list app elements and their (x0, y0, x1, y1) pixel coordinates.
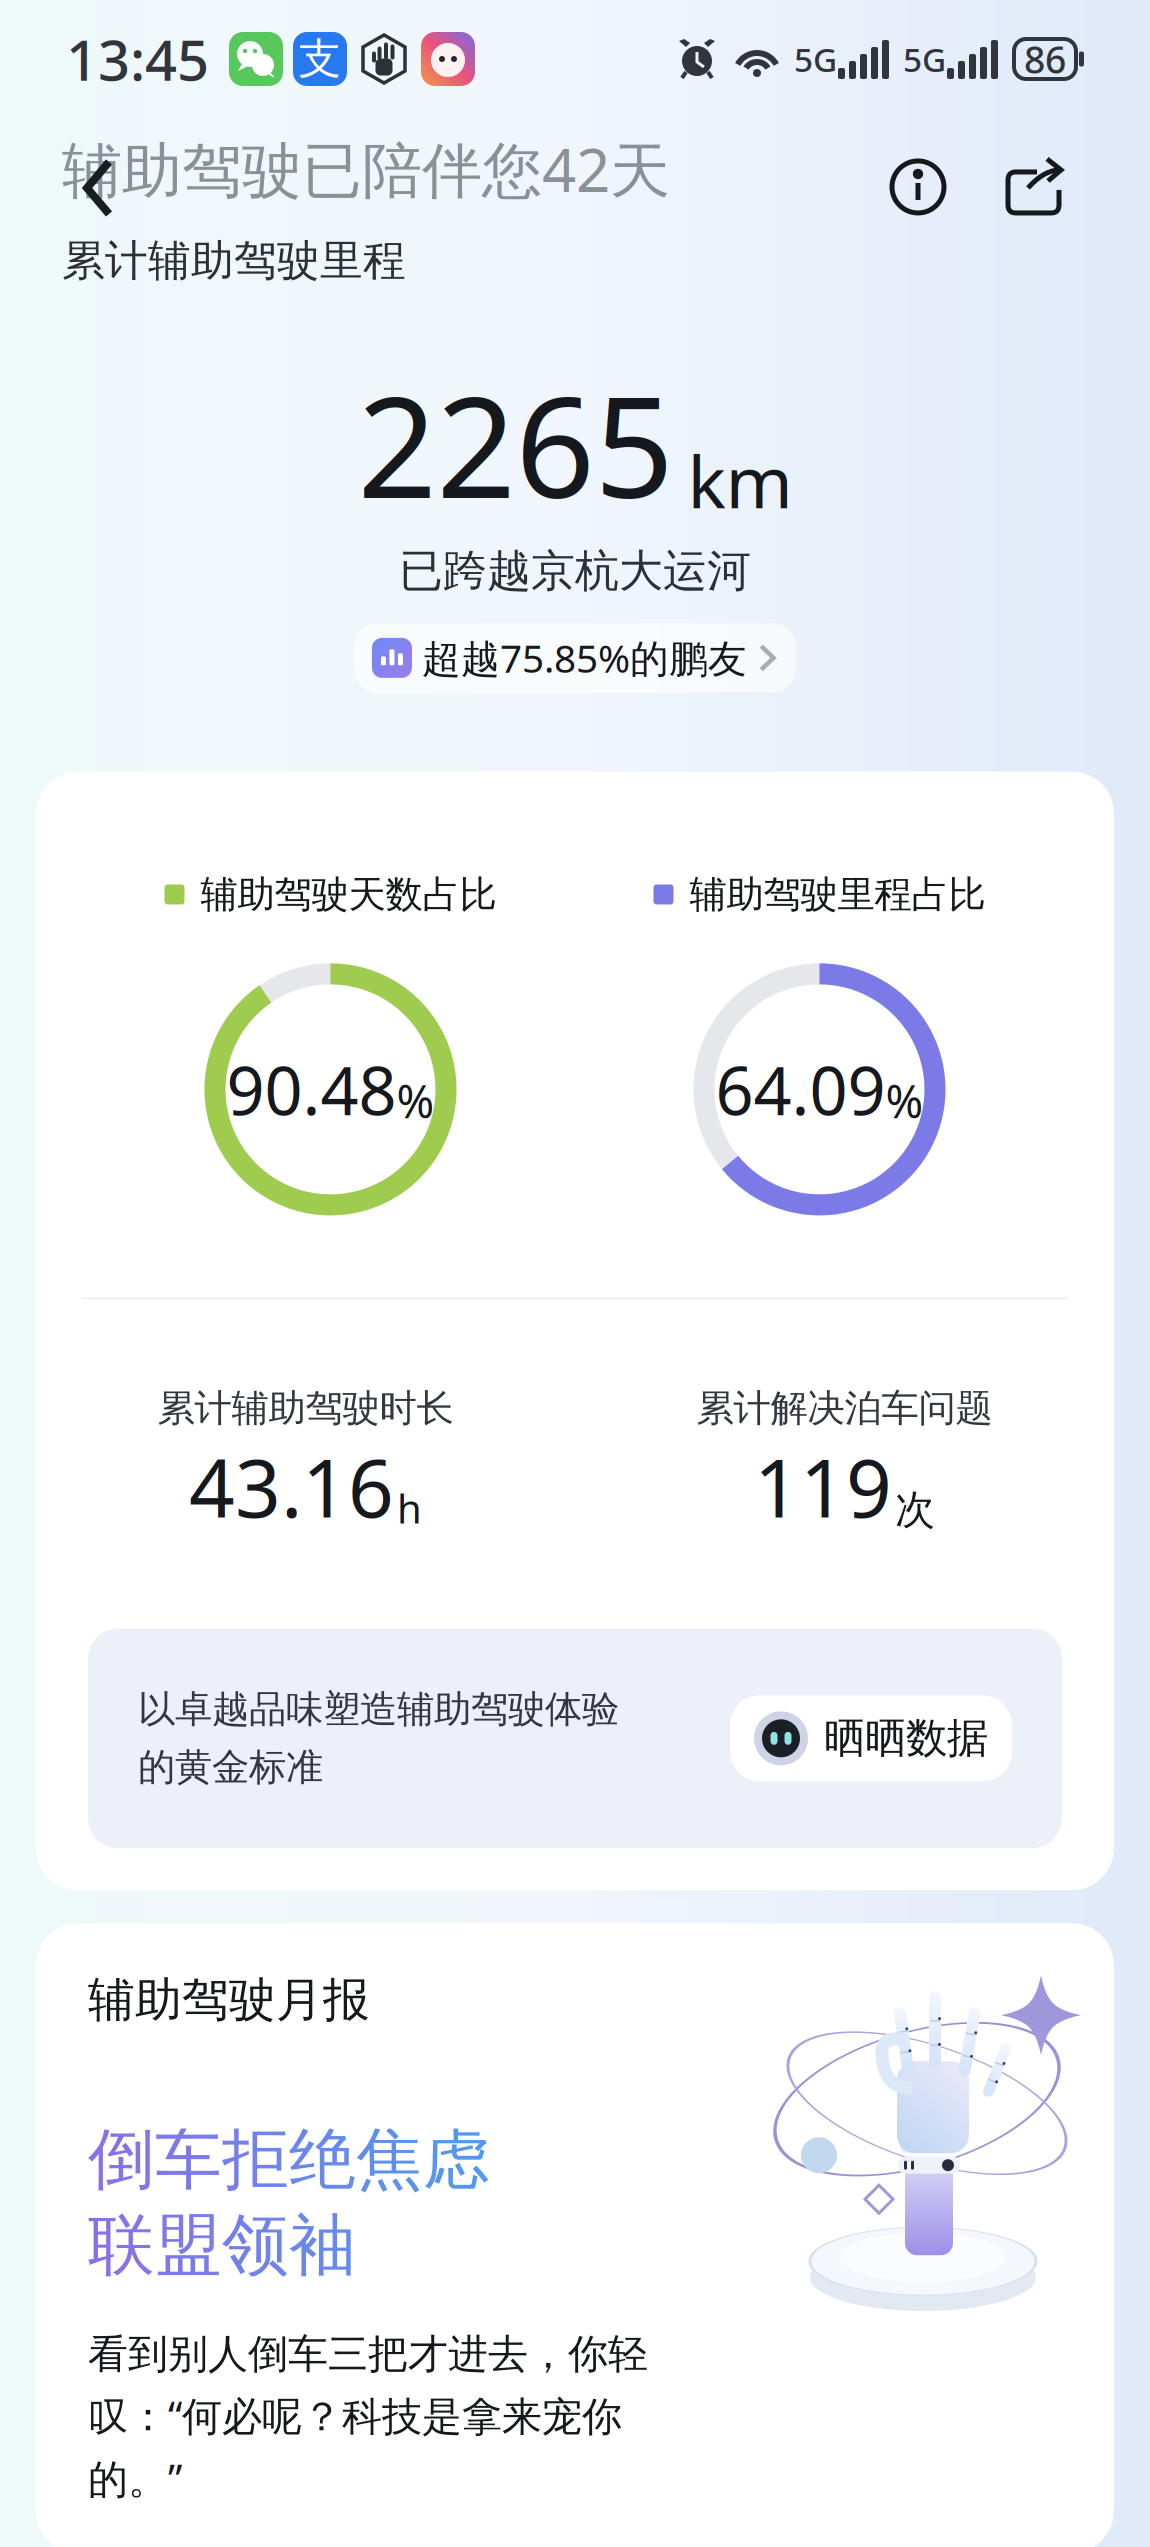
staticText: % (396, 1070, 434, 1131)
staticText: 支 (298, 33, 341, 85)
button[interactable]: 晒晒数据 (730, 1695, 1012, 1781)
staticText: % (885, 1070, 923, 1131)
staticText: 43.16 (189, 1433, 394, 1539)
button[interactable]: 说明 (889, 129, 947, 216)
button[interactable]: 返回 (82, 159, 114, 217)
staticText: 5G (794, 37, 837, 81)
staticText: 辅助驾驶已陪伴您42天 (62, 129, 670, 209)
staticText: 累计辅助驾驶里程 (62, 235, 406, 287)
staticText: 次 (895, 1485, 935, 1534)
staticText: h (397, 1481, 422, 1534)
staticText: 辅助驾驶月报 (88, 1971, 370, 2028)
button[interactable]: 分享 (947, 129, 1066, 217)
staticText: 13:45 (66, 22, 209, 96)
staticText: 晒晒数据 (824, 1713, 988, 1764)
button[interactable]: 超越75.85%的鹏友 (354, 623, 796, 692)
staticText: 辅助驾驶里程占比 (689, 871, 985, 917)
staticText: 累计解决泊车问题 (696, 1385, 992, 1431)
staticText: 以卓越品味塑造辅助驾驶体验 的黄金标准 (138, 1686, 619, 1790)
staticText: km (687, 432, 792, 528)
staticText: 累计辅助驾驶时长 (157, 1385, 453, 1431)
staticText: 86 (1024, 34, 1066, 84)
staticText: 辅助驾驶天数占比 (200, 871, 496, 917)
staticText: 119 (754, 1433, 892, 1539)
staticText: 64.09 (715, 1045, 885, 1134)
staticText: 已跨越京杭大运河 (399, 544, 751, 598)
staticText: 5G (903, 37, 946, 81)
staticText: 看到别人倒车三把才进去，你轻 叹：“何必呢？科技是拿来宠你 的。” (88, 2329, 648, 2505)
staticText: 2265 (357, 352, 673, 536)
staticText: 超越75.85%的鹏友 (422, 632, 747, 683)
staticText: 90.48 (226, 1045, 396, 1134)
